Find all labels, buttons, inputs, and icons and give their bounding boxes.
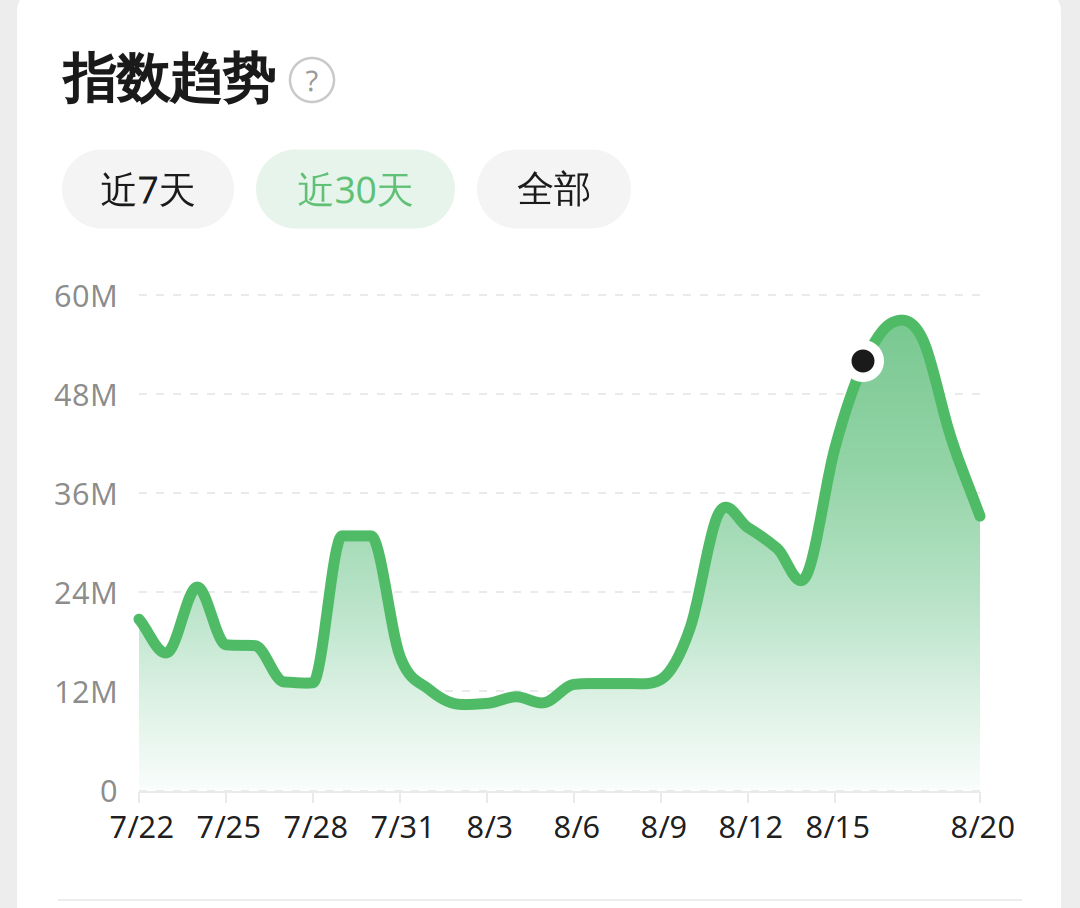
- staticText: 0: [100, 770, 118, 810]
- staticText: 8/20: [950, 806, 1015, 846]
- staticText: 全部: [517, 166, 591, 212]
- staticText: 8/6: [553, 806, 600, 846]
- staticText: 7/25: [196, 806, 261, 846]
- staticText: 指数趋势: [63, 46, 275, 112]
- staticText: ?: [305, 60, 318, 99]
- button[interactable]: 近30天: [256, 149, 455, 228]
- staticText: 8/15: [805, 806, 870, 846]
- staticText: 8/3: [466, 806, 513, 846]
- staticText: 近7天: [100, 164, 195, 214]
- staticText: 近30天: [297, 164, 413, 214]
- staticText: 8/9: [640, 806, 687, 846]
- button[interactable]: 帮助: [290, 58, 334, 102]
- staticText: 60M: [54, 275, 118, 315]
- button[interactable]: 近7天: [62, 149, 234, 228]
- staticText: 12M: [54, 671, 118, 711]
- staticText: 24M: [54, 572, 118, 612]
- staticText: 7/28: [283, 806, 348, 846]
- staticText: 7/31: [370, 806, 435, 846]
- staticText: 7/22: [109, 806, 174, 846]
- button[interactable]: 全部: [477, 149, 631, 228]
- staticText: 36M: [54, 473, 118, 513]
- staticText: 48M: [54, 374, 118, 414]
- staticText: 8/12: [718, 806, 783, 846]
